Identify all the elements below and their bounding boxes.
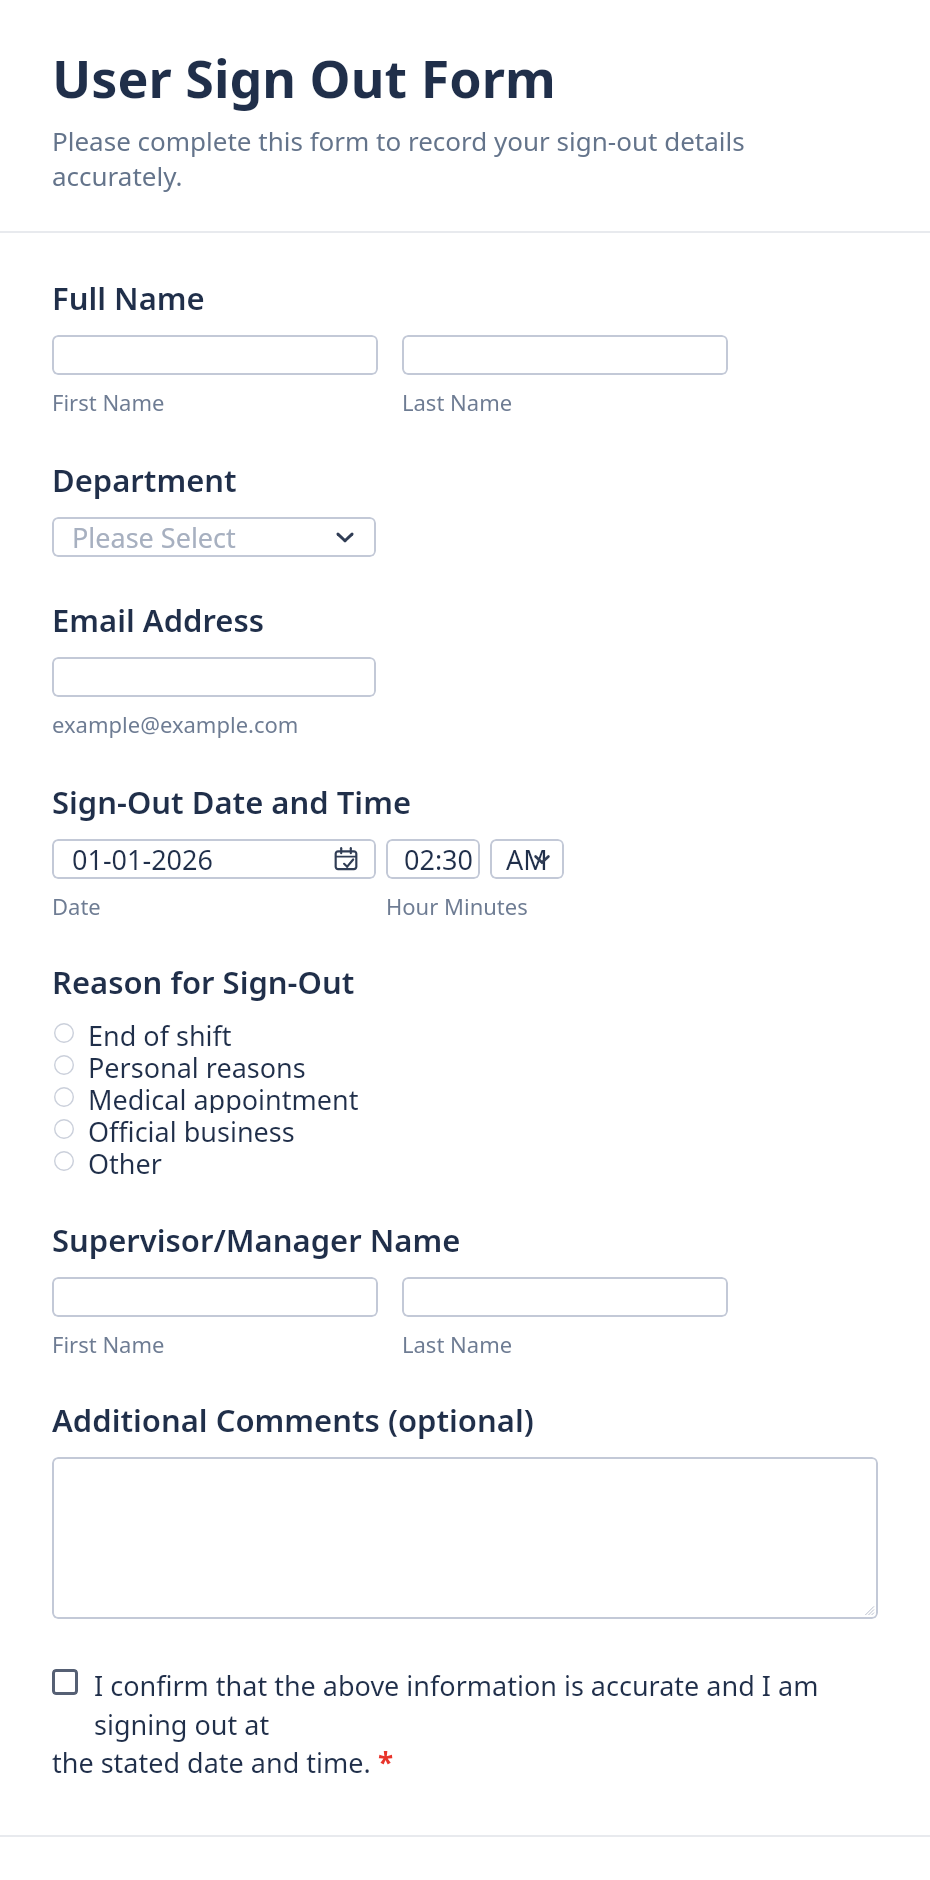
staticText: Personal reasons — [88, 1049, 306, 1081]
button[interactable]: Please Select — [52, 517, 376, 557]
button[interactable]: 02:30 — [386, 839, 480, 879]
staticText: the stated date and time. — [52, 1744, 378, 1781]
button[interactable]: Medical appointment — [52, 1081, 878, 1113]
staticText: Sign-Out Date and Time — [52, 781, 412, 823]
button[interactable] — [52, 335, 378, 375]
button[interactable] — [52, 1277, 378, 1317]
staticText: First Name — [52, 1329, 165, 1359]
staticText: Please Select — [72, 519, 236, 556]
staticText: Email Address — [52, 599, 264, 641]
staticText: Last Name — [402, 1329, 513, 1359]
button[interactable] — [52, 657, 376, 697]
other: Pick date — [52, 839, 358, 879]
staticText: Date — [52, 891, 101, 921]
staticText: User Sign Out Form — [52, 42, 556, 113]
button[interactable]: AM — [490, 839, 564, 879]
staticText: End of shift — [88, 1017, 232, 1049]
staticText: 02:30 — [404, 841, 474, 878]
staticText: example@example.com — [52, 709, 299, 739]
staticText: AM — [506, 841, 548, 878]
staticText: 01-01-2026 — [72, 841, 213, 878]
button[interactable]: Personal reasons — [52, 1049, 878, 1081]
button[interactable]: 01-01-2026 — [52, 839, 376, 879]
button[interactable]: End of shift — [52, 1017, 878, 1049]
staticText: I confirm that the above information is … — [94, 1667, 878, 1743]
button[interactable]: Official business — [52, 1113, 878, 1145]
button[interactable] — [402, 1277, 728, 1317]
staticText: Medical appointment — [88, 1081, 359, 1113]
staticText: Supervisor/Manager Name — [52, 1219, 461, 1261]
staticText: Last Name — [402, 387, 513, 417]
staticText: Hour Minutes — [386, 891, 528, 921]
staticText: Other — [88, 1145, 162, 1177]
button[interactable]: I confirm that the above information is … — [52, 1667, 878, 1743]
button[interactable]: Other — [52, 1145, 878, 1177]
staticText: Reason for Sign-Out — [52, 961, 355, 1003]
staticText: Department — [52, 459, 237, 501]
staticText: Official business — [88, 1113, 295, 1145]
button[interactable] — [52, 1457, 878, 1619]
staticText: Additional Comments (optional) — [52, 1399, 534, 1441]
staticText: * — [378, 1743, 394, 1781]
staticText: First Name — [52, 387, 165, 417]
staticText: Full Name — [52, 277, 205, 319]
staticText: Please complete this form to record your… — [52, 123, 878, 193]
button[interactable] — [402, 335, 728, 375]
